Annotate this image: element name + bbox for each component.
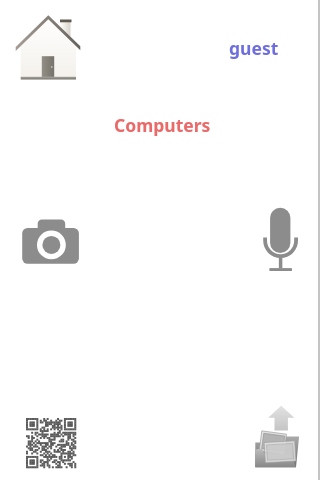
button[interactable]: Home <box>13 10 83 80</box>
staticText: guest <box>229 36 279 60</box>
button[interactable]: QR code <box>26 418 76 468</box>
button[interactable]: Upload <box>254 404 304 468</box>
button[interactable]: Microphone <box>261 205 301 273</box>
button[interactable]: Camera <box>21 218 81 266</box>
staticText: Computers <box>114 113 211 137</box>
button[interactable]: Computers <box>114 113 211 137</box>
button[interactable]: guest <box>229 36 279 60</box>
